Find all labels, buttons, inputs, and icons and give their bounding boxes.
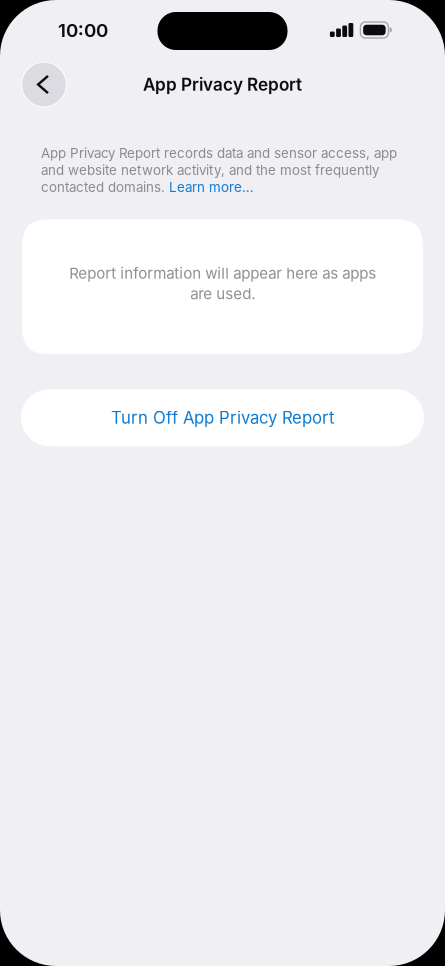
- button[interactable]: Turn Off App Privacy Report: [21, 389, 424, 446]
- staticText: Report information will appear here as a…: [69, 264, 376, 303]
- button[interactable]: Back: [21, 61, 67, 107]
- staticText: 10:00: [58, 19, 108, 42]
- staticText: App Privacy Report: [143, 74, 302, 95]
- staticText: App Privacy Report records data and sens…: [41, 145, 397, 195]
- staticText: Turn Off App Privacy Report: [111, 408, 334, 428]
